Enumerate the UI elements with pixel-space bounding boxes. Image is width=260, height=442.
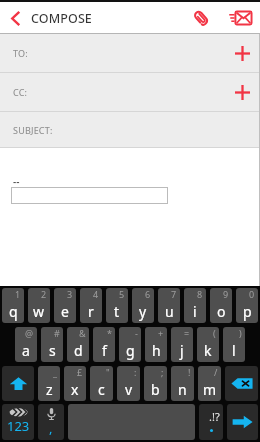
staticText: 3 bbox=[67, 288, 73, 300]
staticText: t bbox=[114, 302, 120, 321]
button[interactable]: Enter bbox=[227, 404, 258, 440]
staticText: 0 bbox=[249, 288, 255, 300]
button[interactable]: 9 bbox=[210, 288, 232, 323]
button[interactable]: - bbox=[119, 327, 141, 362]
staticText: @ bbox=[25, 327, 34, 339]
button[interactable]: 0 bbox=[236, 288, 258, 323]
staticText: g bbox=[126, 341, 135, 360]
staticText: i bbox=[193, 302, 197, 321]
staticText: j bbox=[180, 341, 184, 360]
button[interactable]: / bbox=[198, 366, 221, 401]
staticText: + bbox=[158, 327, 164, 339]
staticText: # bbox=[54, 327, 60, 339]
button[interactable]: & bbox=[67, 327, 89, 362]
staticText: o bbox=[217, 302, 226, 321]
staticText: -- bbox=[13, 175, 20, 189]
staticText: 123 bbox=[7, 417, 30, 435]
button[interactable]: Voice input bbox=[38, 404, 64, 440]
button[interactable]: = bbox=[171, 327, 193, 362]
staticText: * bbox=[107, 327, 112, 339]
staticText: 2 bbox=[41, 288, 47, 300]
staticText: £ bbox=[77, 366, 83, 378]
staticText: 5 bbox=[119, 288, 125, 300]
button[interactable]: .!? bbox=[199, 404, 223, 440]
staticText: / bbox=[214, 366, 218, 378]
staticText: .!? bbox=[209, 409, 220, 424]
button[interactable]: ! bbox=[171, 366, 194, 401]
staticText: b bbox=[151, 380, 160, 399]
staticText: m bbox=[203, 380, 217, 399]
staticText: CC: bbox=[13, 86, 28, 98]
staticText: = bbox=[184, 327, 190, 339]
button[interactable]: Send bbox=[220, 2, 260, 34]
button[interactable]: £ bbox=[64, 366, 86, 401]
staticText: p bbox=[243, 302, 252, 321]
staticText: k bbox=[204, 341, 212, 360]
button[interactable]: @ bbox=[15, 327, 37, 362]
button[interactable]: CC: bbox=[0, 73, 260, 111]
button[interactable]: Numbers and symbols bbox=[2, 404, 34, 440]
staticText: SUBJECT: bbox=[13, 124, 53, 136]
staticText: " bbox=[106, 366, 110, 378]
button[interactable]: Attach file bbox=[181, 2, 220, 34]
staticText: TO: bbox=[13, 47, 28, 59]
staticText: 1 bbox=[15, 288, 21, 300]
button[interactable]: 4 bbox=[80, 288, 102, 323]
button[interactable]: : bbox=[117, 366, 140, 401]
staticText: w bbox=[33, 302, 45, 321]
staticText: - bbox=[135, 327, 138, 339]
button[interactable]: 5 bbox=[106, 288, 128, 323]
button[interactable]: TO: bbox=[0, 34, 260, 72]
staticText: u bbox=[165, 302, 174, 321]
button[interactable]: ; bbox=[144, 366, 167, 401]
button[interactable]: SUBJECT: bbox=[0, 112, 260, 147]
staticText: 7 bbox=[171, 288, 177, 300]
button[interactable]: Backspace bbox=[225, 366, 258, 401]
button[interactable]: 7 bbox=[158, 288, 180, 323]
staticText: a bbox=[22, 341, 30, 360]
staticText: ) bbox=[239, 327, 242, 339]
button[interactable]: 2 bbox=[28, 288, 50, 323]
staticText: h bbox=[152, 341, 161, 360]
staticText: ! bbox=[188, 366, 191, 378]
staticText: f bbox=[102, 341, 107, 360]
staticText: ; bbox=[161, 366, 164, 378]
staticText: 8 bbox=[197, 288, 203, 300]
button[interactable]: _ bbox=[38, 366, 60, 401]
staticText: COMPOSE bbox=[31, 10, 92, 27]
staticText: n bbox=[178, 380, 187, 399]
staticText: r bbox=[88, 302, 94, 321]
staticText: v bbox=[125, 380, 133, 399]
button[interactable]: 8 bbox=[184, 288, 206, 323]
staticText: c bbox=[98, 380, 105, 399]
staticText: s bbox=[49, 341, 56, 360]
staticText: _ bbox=[53, 366, 57, 378]
button[interactable]: 1 bbox=[2, 288, 24, 323]
button[interactable]: ( bbox=[197, 327, 219, 362]
button[interactable]: Back bbox=[0, 2, 31, 34]
staticText: d bbox=[74, 341, 83, 360]
button[interactable]: Shift bbox=[2, 366, 34, 401]
button[interactable]: Add recipient bbox=[224, 73, 260, 111]
button[interactable]: + bbox=[145, 327, 167, 362]
button[interactable]: Add recipient bbox=[224, 34, 260, 72]
staticText: ( bbox=[213, 327, 216, 339]
button[interactable]: 3 bbox=[54, 288, 76, 323]
button[interactable] bbox=[11, 187, 168, 204]
staticText: q bbox=[9, 302, 18, 321]
button[interactable]: # bbox=[41, 327, 63, 362]
staticText: e bbox=[61, 302, 69, 321]
staticText: & bbox=[79, 327, 86, 339]
button[interactable]: ) bbox=[223, 327, 245, 362]
staticText: , bbox=[49, 419, 53, 437]
button[interactable]: " bbox=[90, 366, 113, 401]
staticText: l bbox=[232, 341, 236, 360]
staticText: : bbox=[134, 366, 137, 378]
staticText: y bbox=[139, 302, 147, 321]
button[interactable]: 6 bbox=[132, 288, 154, 323]
staticText: x bbox=[71, 380, 79, 399]
staticText: 9 bbox=[223, 288, 229, 300]
staticText: z bbox=[46, 380, 53, 399]
button[interactable]: * bbox=[93, 327, 115, 362]
